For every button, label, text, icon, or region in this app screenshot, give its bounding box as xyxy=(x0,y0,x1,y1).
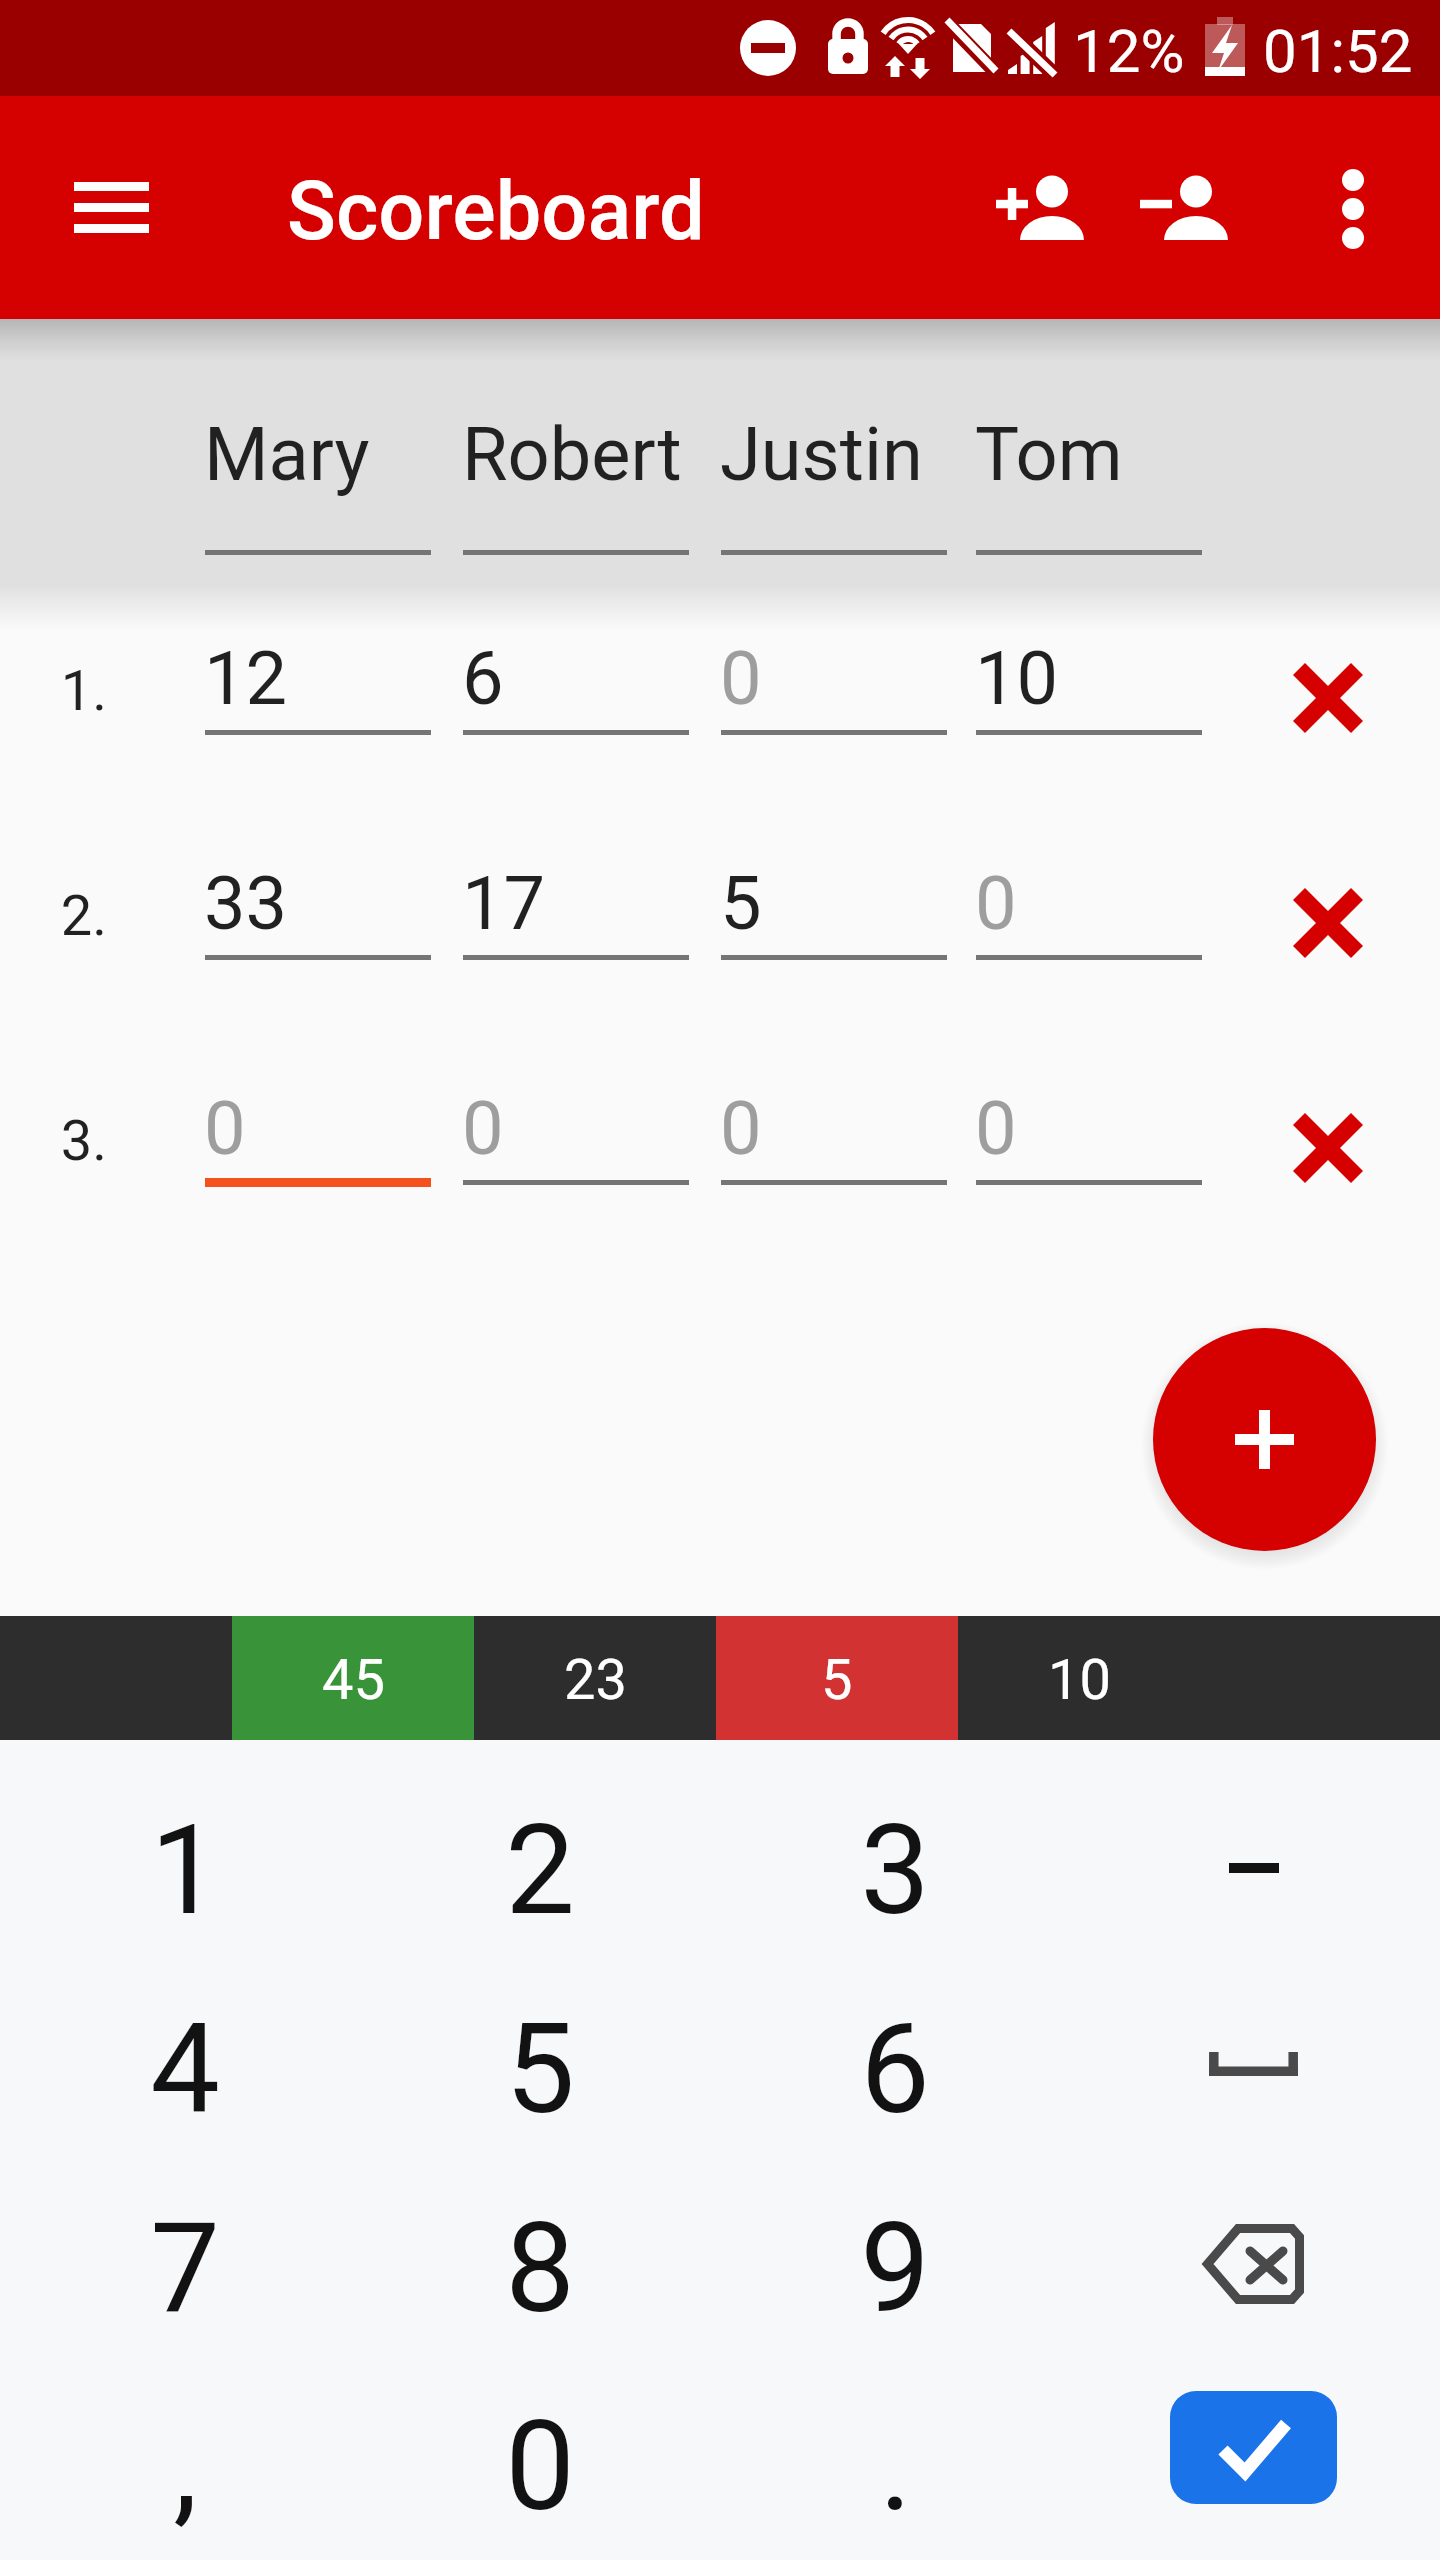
button[interactable]: Justin xyxy=(721,394,947,556)
button[interactable]: Remove player xyxy=(1123,137,1268,282)
button[interactable]: 0 xyxy=(205,1073,431,1195)
staticText: 5 xyxy=(821,1647,853,1713)
button[interactable]: Tom xyxy=(976,394,1202,556)
button[interactable]: 0 xyxy=(976,848,1202,970)
button[interactable]: Backspace xyxy=(1075,2141,1431,2341)
staticText: 9 xyxy=(860,2196,930,2341)
button[interactable]: 6 xyxy=(717,1942,1073,2142)
button[interactable]: 12 xyxy=(205,623,431,745)
button[interactable]: Robert xyxy=(463,394,689,556)
button[interactable]: Delete round 1 xyxy=(1258,628,1398,768)
staticText: 17 xyxy=(462,860,546,947)
staticText: Tom xyxy=(975,411,1123,498)
button[interactable]: 23 xyxy=(474,1616,716,1740)
button[interactable]: 9 xyxy=(717,2141,1073,2341)
button[interactable]: 2 xyxy=(362,1743,718,1943)
button[interactable]: 33 xyxy=(205,848,431,970)
button[interactable]: 0 xyxy=(976,1073,1202,1195)
staticText: 33 xyxy=(204,860,288,947)
button[interactable]: 10 xyxy=(976,623,1202,745)
button[interactable]: 5 xyxy=(721,848,947,970)
button[interactable]: 0 xyxy=(721,1073,947,1195)
button[interactable]: 7 xyxy=(7,2141,363,2341)
staticText: 0 xyxy=(505,2394,575,2539)
button[interactable]: 3 xyxy=(717,1743,1073,1943)
staticText: 12% xyxy=(1073,16,1185,86)
staticText: 1 xyxy=(150,1798,220,1943)
staticText: Scoreboard xyxy=(287,164,705,259)
staticText: 7 xyxy=(150,2196,220,2341)
staticText: Robert xyxy=(462,411,682,498)
button[interactable]: , xyxy=(7,2339,363,2539)
staticText: Justin xyxy=(720,411,923,498)
staticText: 23 xyxy=(564,1647,627,1713)
button[interactable]: Enter xyxy=(1170,2391,1337,2504)
staticText: 2 xyxy=(505,1798,575,1943)
button[interactable]: 0 xyxy=(362,2339,718,2539)
button[interactable]: Delete round 3 xyxy=(1258,1078,1398,1218)
staticText: , xyxy=(173,2394,198,2539)
button[interactable]: 1 xyxy=(7,1743,363,1943)
staticText: 0 xyxy=(975,860,1017,947)
staticText: 3 xyxy=(860,1798,930,1943)
staticText: 10 xyxy=(975,635,1059,722)
button[interactable]: 0 xyxy=(721,623,947,745)
staticText: 45 xyxy=(322,1647,385,1713)
staticText: 12 xyxy=(204,635,288,722)
button[interactable]: Minus xyxy=(1075,1743,1431,1943)
staticText: . xyxy=(879,2394,912,2539)
button[interactable]: Mary xyxy=(205,394,431,556)
staticText: 5 xyxy=(505,1997,575,2142)
button[interactable]: Space xyxy=(1075,1942,1431,2142)
staticText: 5 xyxy=(720,860,762,947)
button[interactable]: 8 xyxy=(362,2141,718,2341)
button[interactable]: 6 xyxy=(463,623,689,745)
staticText: 0 xyxy=(720,1085,762,1172)
staticText: 0 xyxy=(975,1085,1017,1172)
button[interactable]: Delete round 2 xyxy=(1258,853,1398,993)
staticText: 0 xyxy=(462,1085,504,1172)
button[interactable]: More options xyxy=(1281,137,1426,282)
staticText: 6 xyxy=(860,1997,930,2142)
button[interactable]: Add player xyxy=(979,137,1124,282)
button[interactable]: 5 xyxy=(716,1616,958,1740)
button[interactable]: Open navigation menu xyxy=(39,137,184,282)
staticText: 0 xyxy=(720,635,762,722)
button[interactable]: 0 xyxy=(463,1073,689,1195)
staticText: 6 xyxy=(462,635,504,722)
button[interactable]: Add round xyxy=(1153,1328,1376,1551)
button[interactable]: . xyxy=(717,2339,1073,2539)
button[interactable]: 10 xyxy=(958,1616,1200,1740)
button[interactable]: 4 xyxy=(7,1942,363,2142)
staticText: 01:52 xyxy=(1263,16,1413,86)
button[interactable]: 5 xyxy=(362,1942,718,2142)
staticText: 3. xyxy=(33,1108,107,1174)
button[interactable]: 45 xyxy=(232,1616,474,1740)
staticText: 1. xyxy=(33,658,107,724)
staticText: 8 xyxy=(505,2196,575,2341)
staticText: 2. xyxy=(33,883,107,949)
staticText: Mary xyxy=(204,411,370,498)
button[interactable]: 17 xyxy=(463,848,689,970)
staticText: 0 xyxy=(204,1085,246,1172)
staticText: 10 xyxy=(1048,1647,1111,1713)
staticText: 4 xyxy=(150,1997,220,2142)
